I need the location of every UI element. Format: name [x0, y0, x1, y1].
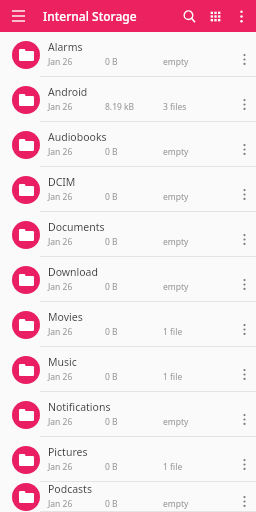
button[interactable]: More options for Audiobooks [232, 137, 256, 161]
button[interactable]: Grid view [202, 3, 228, 29]
staticText: Android [48, 85, 88, 99]
button[interactable]: DCIM [0, 167, 256, 212]
staticText: Alarms [48, 40, 83, 54]
staticText: 1 file [163, 371, 183, 383]
staticText: Jan 26 [48, 326, 105, 338]
staticText: Jan 26 [48, 236, 105, 248]
staticText: 0 B [105, 416, 163, 428]
button[interactable]: More options for Download [232, 272, 256, 296]
button[interactable]: More options for Alarms [232, 47, 256, 71]
button[interactable]: More options for Pictures [232, 452, 256, 476]
staticText: Internal Storage [43, 8, 137, 24]
staticText: Jan 26 [48, 101, 105, 113]
button[interactable]: Notifications [0, 392, 256, 437]
staticText: 1 file [163, 326, 183, 338]
staticText: 0 B [105, 146, 163, 158]
button[interactable]: Documents [0, 212, 256, 257]
staticText: 0 B [105, 461, 163, 473]
button[interactable]: More options for Notifications [232, 407, 256, 431]
button[interactable]: Podcasts [0, 482, 256, 512]
staticText: Music [48, 355, 77, 369]
staticText: Notifications [48, 400, 111, 414]
button[interactable]: Open navigation drawer [4, 2, 32, 30]
staticText: Download [48, 265, 98, 279]
staticText: Jan 26 [48, 191, 105, 203]
staticText: empty [163, 56, 189, 68]
staticText: 0 B [105, 281, 163, 293]
staticText: 8.19 kB [105, 101, 163, 113]
staticText: Jan 26 [48, 56, 105, 68]
staticText: 0 B [105, 236, 163, 248]
staticText: Pictures [48, 445, 88, 459]
button[interactable]: Pictures [0, 437, 256, 482]
staticText: Jan 26 [48, 416, 105, 428]
button[interactable]: Search [176, 3, 202, 29]
button[interactable]: More options [228, 3, 254, 29]
staticText: empty [163, 191, 189, 203]
staticText: Jan 26 [48, 461, 105, 473]
staticText: 0 B [105, 56, 163, 68]
button[interactable]: More options for Movies [232, 317, 256, 341]
staticText: Jan 26 [48, 371, 105, 383]
staticText: 0 B [105, 191, 163, 203]
button[interactable]: More options for DCIM [232, 182, 256, 206]
staticText: Documents [48, 220, 105, 234]
staticText: Jan 26 [48, 498, 105, 510]
button[interactable]: More options for Android [232, 92, 256, 116]
button[interactable]: More options for Documents [232, 227, 256, 251]
button[interactable]: Download [0, 257, 256, 302]
staticText: empty [163, 498, 189, 510]
button[interactable]: Alarms [0, 32, 256, 77]
staticText: Audiobooks [48, 130, 107, 144]
staticText: 3 files [163, 101, 187, 113]
staticText: 0 B [105, 371, 163, 383]
staticText: Podcasts [48, 482, 92, 496]
staticText: 0 B [105, 326, 163, 338]
staticText: 0 B [105, 498, 163, 510]
button[interactable]: More options for Music [232, 362, 256, 386]
button[interactable]: More options for Podcasts [232, 489, 256, 512]
button[interactable]: Music [0, 347, 256, 392]
button[interactable]: Movies [0, 302, 256, 347]
staticText: empty [163, 281, 189, 293]
staticText: empty [163, 416, 189, 428]
staticText: Movies [48, 310, 83, 324]
staticText: empty [163, 146, 189, 158]
button[interactable]: Android [0, 77, 256, 122]
button[interactable]: Audiobooks [0, 122, 256, 167]
staticText: DCIM [48, 175, 76, 189]
staticText: Jan 26 [48, 281, 105, 293]
staticText: 1 file [163, 461, 183, 473]
staticText: empty [163, 236, 189, 248]
staticText: Jan 26 [48, 146, 105, 158]
